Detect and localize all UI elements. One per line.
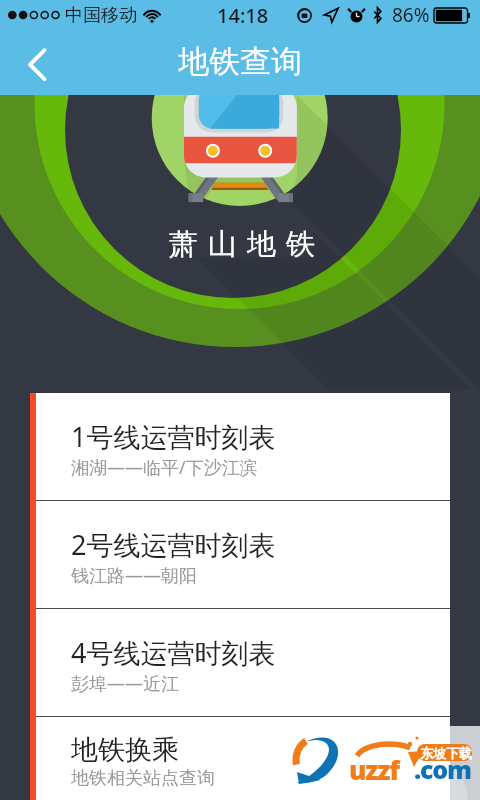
staticText: 中国移动 <box>65 4 137 27</box>
button[interactable]: 地铁换乘 <box>30 717 450 800</box>
staticText: 地铁相关站点查询 <box>71 767 215 790</box>
staticText: 1号线运营时刻表 <box>71 418 276 455</box>
button[interactable]: 2号线运营时刻表 <box>30 501 450 608</box>
staticText: 4号线运营时刻表 <box>71 634 276 671</box>
button[interactable]: 4号线运营时刻表 <box>30 609 450 716</box>
button[interactable]: 1号线运营时刻表 <box>30 393 450 500</box>
staticText: 2号线运营时刻表 <box>71 526 276 563</box>
staticText: 86% <box>392 2 430 28</box>
staticText: 彭埠——近江 <box>71 671 179 696</box>
staticText: uzzf <box>349 752 399 787</box>
staticText: 湘湖——临平/下沙江滨 <box>71 455 258 480</box>
staticText: 钱江路——朝阳 <box>71 563 197 588</box>
staticText: .com <box>414 752 471 786</box>
button[interactable]: Back <box>0 30 62 95</box>
staticText: 14:18 <box>217 2 269 29</box>
staticText: 萧山地铁 <box>164 226 320 263</box>
staticText: 东坡下载 <box>420 745 472 761</box>
staticText: 地铁查询 <box>178 42 302 81</box>
staticText: 地铁换乘 <box>71 733 179 767</box>
